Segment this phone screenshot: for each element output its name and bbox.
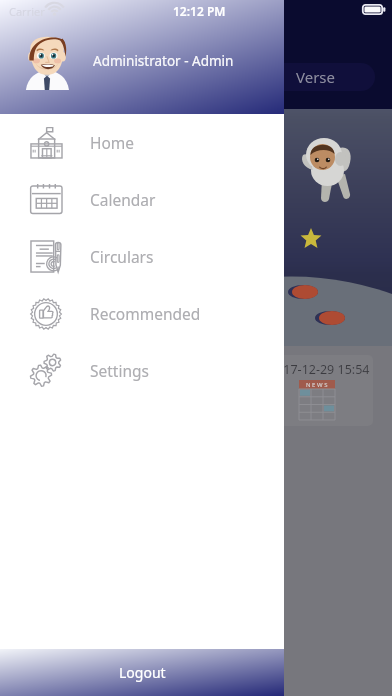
staticText: Recommended (90, 303, 201, 324)
staticText: Home (90, 132, 135, 153)
button[interactable]: Settings (0, 342, 284, 399)
staticText: Administrator - Admin (93, 52, 234, 70)
staticText: 2017-12-29 15:54 (269, 361, 370, 378)
staticText: Circulars (90, 246, 154, 267)
button[interactable]: Logout (0, 649, 284, 696)
staticText: Carrier (9, 4, 45, 19)
staticText: Calendar (90, 189, 156, 210)
staticText: Verse (296, 67, 336, 87)
button[interactable]: Home (0, 114, 284, 171)
staticText: Settings (90, 360, 149, 381)
button[interactable]: Recommended (0, 285, 284, 342)
button[interactable]: Circulars (0, 228, 284, 285)
staticText: Logout (119, 663, 166, 682)
staticText: N E W S (306, 381, 328, 389)
staticText: 12:12 PM (173, 3, 226, 19)
button[interactable]: Calendar (0, 171, 284, 228)
